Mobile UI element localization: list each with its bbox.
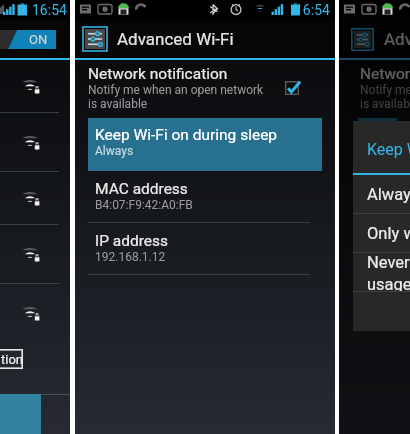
staticText: IP address [95, 232, 169, 250]
staticText: Always [367, 185, 410, 204]
staticText: Notify me when an open network is availa… [88, 83, 264, 111]
button[interactable] [0, 60, 70, 113]
button[interactable]: IP address [75, 223, 335, 275]
button[interactable]: Advanced Wi-Fi [75, 20, 335, 58]
staticText: Always [95, 144, 134, 158]
staticText: Advanced Wi-Fi [384, 29, 410, 49]
staticText: 16:54 [32, 2, 67, 18]
button[interactable] [0, 225, 70, 284]
staticText: Notify me when an open network [360, 83, 410, 97]
staticText: Keep Wi-Fi on during sleep [95, 126, 278, 144]
staticText: 16:54 [295, 2, 330, 18]
staticText: B4:07:F9:42:A0:FB [95, 198, 193, 212]
button[interactable]: Keep Wi-Fi on during sleep [353, 121, 410, 331]
staticText: is available [360, 97, 410, 111]
staticText: Keep Wi-Fi on during sleep [367, 140, 410, 159]
staticText: Network notification [88, 65, 228, 83]
staticText: ON [29, 32, 48, 47]
staticText: Advanced Wi-Fi [117, 29, 234, 49]
button[interactable]: Add network [0, 349, 23, 369]
staticText: Only when plugged in [367, 224, 410, 243]
button[interactable] [0, 172, 70, 225]
button[interactable]: Keep Wi-Fi on during sleep [88, 118, 322, 171]
button[interactable]: MAC address [75, 171, 335, 223]
staticText: tion [1, 352, 23, 367]
button[interactable]: ON [0, 20, 70, 58]
button[interactable]: Only when plugged in [353, 214, 410, 253]
button[interactable] [0, 284, 70, 343]
button[interactable]: Never (increases data usage) [353, 253, 410, 292]
staticText: Never (increases data usage) [367, 253, 410, 292]
staticText: 192.168.1.12 [95, 250, 166, 264]
button[interactable] [0, 113, 70, 172]
staticText: MAC address [95, 180, 188, 198]
staticText: Network notification [360, 65, 410, 83]
button[interactable]: Always [353, 175, 410, 214]
button[interactable]: Network notification [75, 60, 335, 118]
